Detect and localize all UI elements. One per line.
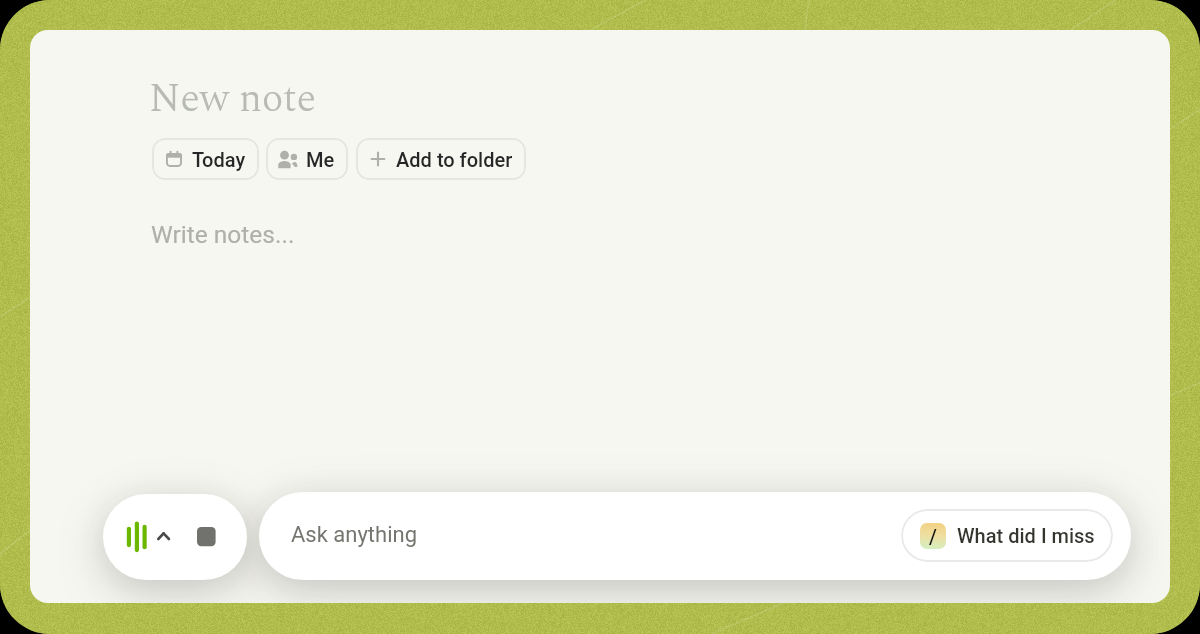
staticText: Add to folder: [396, 148, 513, 171]
staticText: Write notes...: [151, 220, 295, 249]
button[interactable]: Me: [266, 138, 348, 180]
button[interactable]: Recording controls: [103, 494, 247, 580]
button[interactable]: Add to folder: [356, 138, 526, 180]
staticText: Ask anything: [291, 522, 418, 548]
staticText: New note: [149, 69, 317, 130]
staticText: Today: [192, 148, 246, 171]
button[interactable]: Today: [152, 138, 259, 180]
staticText: Me: [306, 148, 335, 171]
button[interactable]: /: [901, 509, 1113, 562]
staticText: What did I miss: [957, 524, 1095, 547]
button[interactable]: Ask anything: [259, 492, 1131, 580]
staticText: /: [929, 525, 937, 548]
